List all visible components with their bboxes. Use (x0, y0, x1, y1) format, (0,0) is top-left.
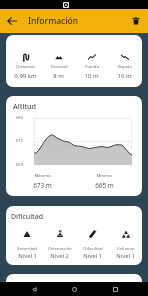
staticText: Nivel 2 (50, 252, 69, 260)
staticText: 670 (16, 138, 23, 143)
staticText: 665 m (95, 181, 114, 190)
staticText: Bajada (118, 63, 132, 69)
staticText: 660 (16, 162, 23, 167)
button[interactable]: Dificultad (76, 230, 109, 260)
button[interactable]: Máxima (11, 172, 73, 190)
staticText: Nivel 1 (116, 252, 135, 260)
staticText: 0.99 km (14, 72, 37, 80)
staticText: 10 m (117, 72, 132, 80)
button[interactable]: Orientación (43, 230, 76, 260)
button[interactable]: Subida (75, 53, 108, 87)
staticText: Máxima (34, 172, 51, 178)
button[interactable]: Home (67, 282, 81, 296)
staticText: Orientación (48, 245, 72, 251)
staticText: Información (28, 15, 79, 27)
button[interactable]: Distancia (9, 53, 42, 87)
staticText: 673 m (33, 181, 52, 190)
button[interactable]: Back (0, 9, 24, 33)
staticText: 8 m (53, 72, 64, 80)
staticText: Subida (85, 63, 99, 69)
button[interactable]: Esfuerzo (109, 230, 142, 260)
staticText: Nivel 1 (18, 252, 37, 260)
staticText: Nivel 1 (83, 252, 102, 260)
staticText: Altitud (13, 101, 37, 111)
staticText: Desnivel (50, 63, 68, 69)
staticText: Mínima (96, 172, 112, 178)
staticText: Severidad (17, 245, 37, 251)
staticText: 10 m (84, 72, 99, 80)
staticText: Distancia (16, 63, 35, 69)
staticText: Dificultad (11, 212, 44, 222)
staticText: Dificultad (83, 245, 103, 251)
button[interactable]: Mínima (73, 172, 135, 190)
staticText: Esfuerzo (117, 245, 135, 251)
button[interactable]: Recents (108, 282, 122, 296)
staticText: 680 (16, 115, 23, 120)
button[interactable]: Severidad (11, 230, 43, 260)
button[interactable]: Desnivel (42, 53, 75, 87)
button[interactable]: Delete (124, 9, 148, 33)
button[interactable]: Back (27, 282, 41, 296)
button[interactable]: Bajada (108, 53, 141, 87)
